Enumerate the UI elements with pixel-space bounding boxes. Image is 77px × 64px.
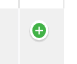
- button[interactable]: Add: [30, 20, 49, 41]
